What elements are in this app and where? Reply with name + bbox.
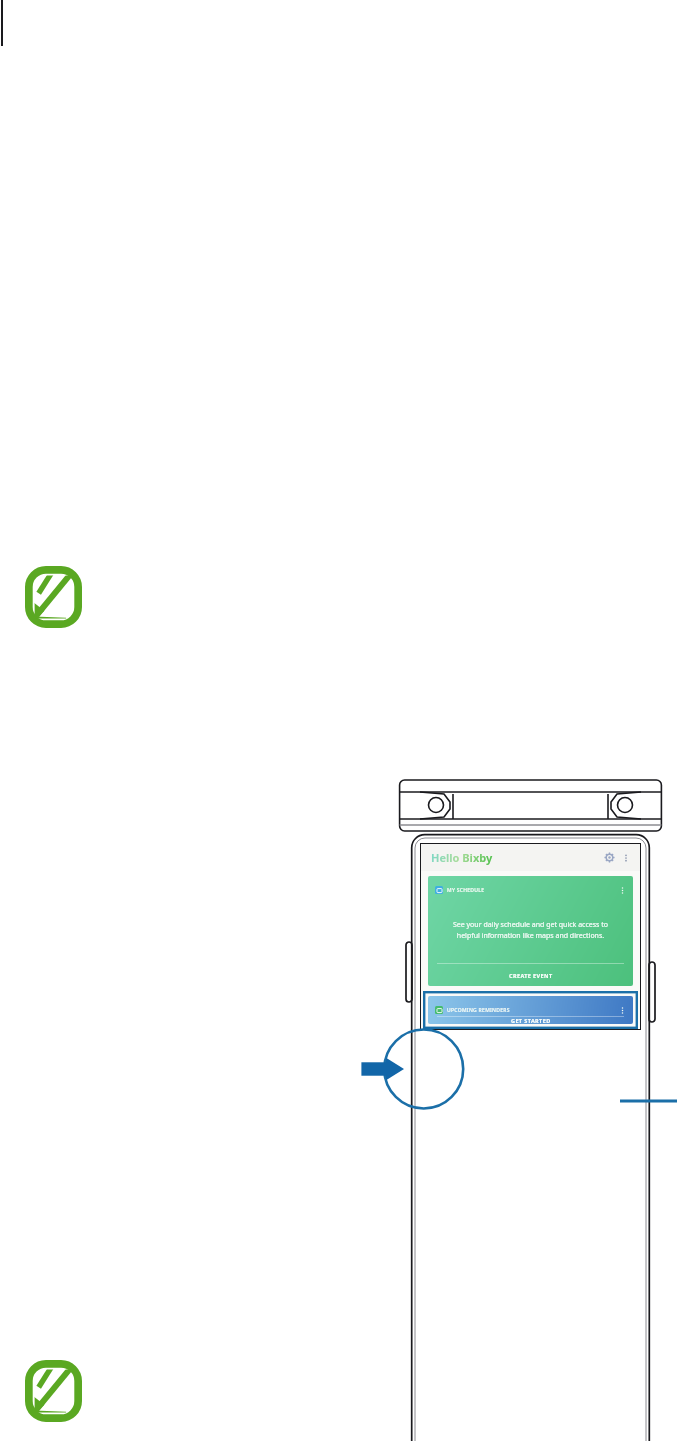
button[interactable]: CREATE EVENT bbox=[428, 964, 633, 986]
staticText: Hello Bixby bbox=[431, 850, 493, 865]
staticText: GET STARTED bbox=[511, 1017, 551, 1024]
button[interactable]: Card options bbox=[616, 884, 628, 896]
button[interactable]: Settings bbox=[601, 849, 618, 866]
staticText: MY SCHEDULE bbox=[447, 887, 485, 894]
button[interactable]: Card options bbox=[616, 1004, 628, 1016]
staticText: See your daily schedule and get quick ac… bbox=[442, 920, 619, 940]
button[interactable]: More options bbox=[618, 850, 633, 865]
button[interactable]: GET STARTED bbox=[428, 1017, 633, 1024]
button[interactable]: UPCOMING REMINDERS bbox=[428, 996, 633, 1024]
button[interactable]: MY SCHEDULE bbox=[428, 876, 633, 986]
staticText: CREATE EVENT bbox=[509, 972, 553, 979]
staticText: UPCOMING REMINDERS bbox=[447, 1007, 510, 1014]
